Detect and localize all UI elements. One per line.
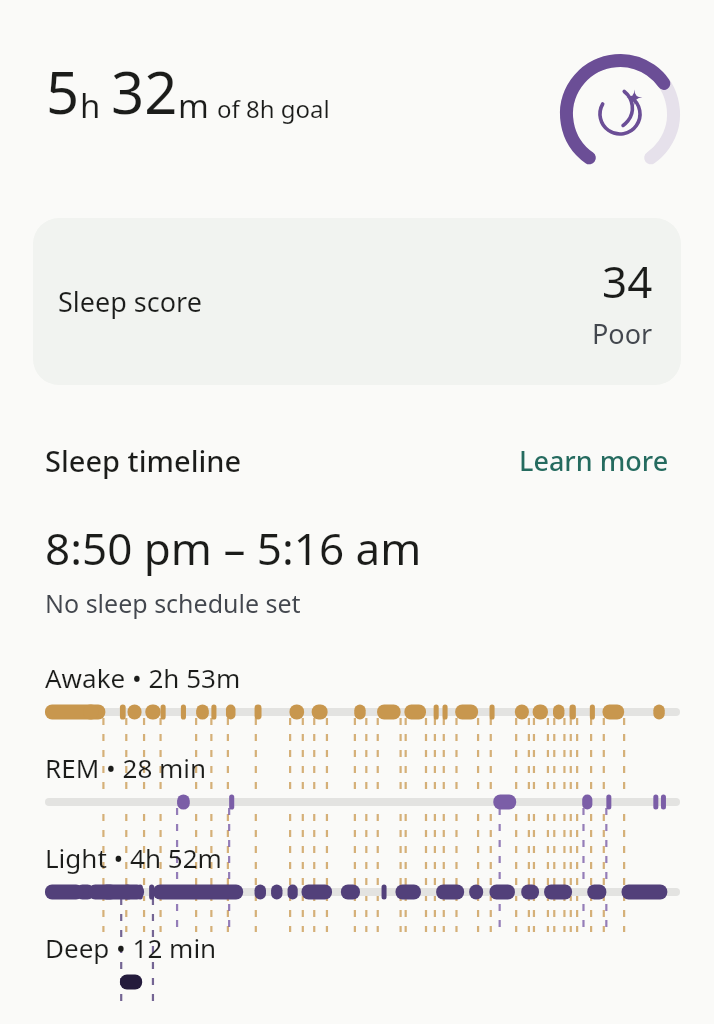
staticText: 34 [602,251,653,311]
staticText: h [80,83,101,128]
staticText: 5 [46,52,80,131]
staticText: Light • 4h 52m [45,840,222,875]
staticText: Sleep score [58,283,202,320]
staticText: Deep • 12 min [45,930,217,965]
staticText: No sleep schedule set [45,586,301,620]
button[interactable]: Sleep goal progress [558,52,682,176]
staticText: 8:50 pm – 5:16 am [45,518,422,578]
staticText: m [178,83,209,128]
button[interactable]: Sleep score [33,218,681,385]
staticText: Learn more [519,442,669,479]
staticText: Sleep timeline [45,441,519,480]
staticText: Awake • 2h 53m [45,660,241,695]
staticText: 32 [111,52,178,131]
staticText: Poor [592,315,653,352]
button[interactable]: Learn more [519,442,669,479]
staticText: of 8h goal [217,92,330,125]
staticText: REM • 28 min [45,750,207,785]
